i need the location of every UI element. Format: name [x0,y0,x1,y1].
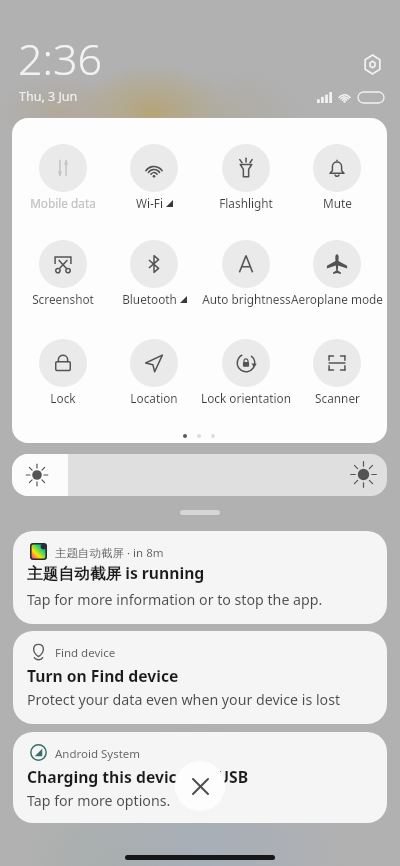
button[interactable] [109,339,199,403]
staticText: Screenshot [32,291,94,307]
staticText: Location [130,390,178,406]
staticText: Mobile data [30,195,96,211]
staticText: 主题自动截屏 · in 8m [55,545,164,561]
button[interactable] [201,240,291,304]
staticText: Lock [50,390,76,406]
button[interactable]: Find device [13,631,387,724]
staticText: Aeroplane mode [291,291,383,307]
staticText: Lock orientation [201,390,291,406]
button[interactable] [109,144,199,208]
staticText: Scanner [315,390,360,406]
button[interactable] [292,240,382,304]
button[interactable] [292,144,382,208]
staticText: Mute [323,195,352,211]
staticText: 主题自动截屏 is running [27,562,205,583]
staticText: Find device [55,645,116,661]
staticText: Android System [55,746,141,762]
staticText: Tap for more options. [27,791,171,810]
staticText: Bluetooth [122,291,177,307]
button[interactable] [18,339,108,403]
staticText: Turn on Find device [27,665,179,686]
button[interactable]: Clear all notifications [175,761,225,811]
staticText: Auto brightness [202,291,291,307]
button[interactable]: Settings [358,50,387,79]
staticText: Charging this device via USB [27,766,249,787]
button[interactable] [18,144,108,208]
button[interactable]: 主题自动截屏 · in 8m [13,531,387,624]
staticText: Protect your data even when your device … [27,690,341,709]
staticText: Wi-Fi [136,195,163,211]
button[interactable]: Brightness [12,454,387,496]
staticText: Tap for more information or to stop the … [27,590,323,609]
staticText: Flashlight [219,195,273,211]
staticText: Thu, 3 Jun [19,88,78,105]
button[interactable] [201,144,291,208]
button[interactable] [201,339,291,403]
button[interactable] [292,339,382,403]
staticText: 2:36 [18,29,103,88]
button[interactable] [109,240,199,304]
button[interactable]: Android System [13,732,387,823]
button[interactable] [18,240,108,304]
